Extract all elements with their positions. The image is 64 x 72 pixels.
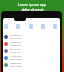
staticText: dolore magna — [10, 58, 22, 60]
staticText: dolor sit amet — [21, 7, 44, 12]
staticText: Sed do eius — [10, 48, 21, 51]
button[interactable]: Lorem ipsum — [4, 33, 60, 40]
staticText: Lorem ipsum app — [18, 2, 46, 7]
button[interactable]: Aliqua enim — [4, 61, 60, 68]
button[interactable]: Consectetur — [4, 40, 60, 47]
staticText: Ut labore et — [10, 55, 22, 58]
staticText: Lorem ipsum — [10, 34, 23, 37]
staticText: tempor incid — [10, 51, 21, 53]
staticText: dolor sit amet — [10, 37, 22, 39]
staticText: Aliqua enim — [10, 62, 22, 65]
staticText: minim veniam — [10, 65, 23, 67]
staticText: Consectetur — [10, 41, 22, 44]
staticText: adipiscing elit — [10, 44, 22, 46]
button[interactable]: Sed do eius — [4, 47, 60, 54]
button[interactable]: Ut labore et — [4, 54, 60, 61]
